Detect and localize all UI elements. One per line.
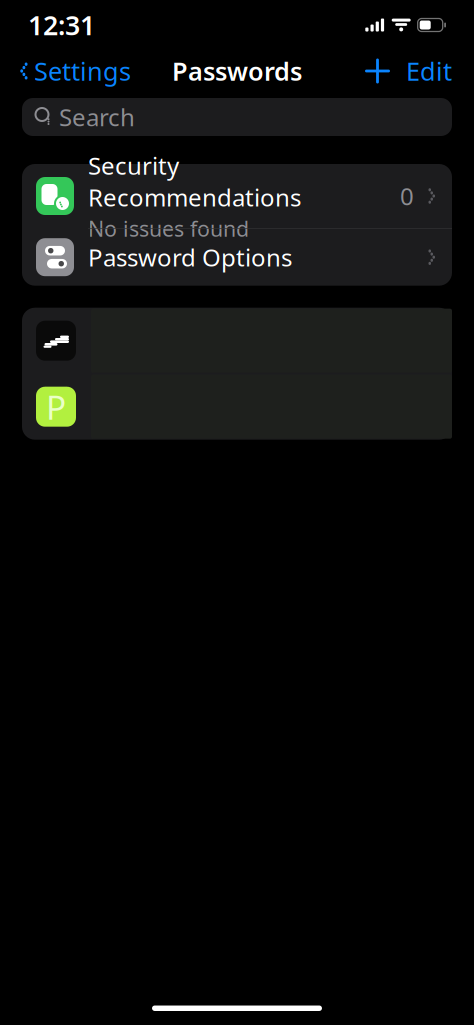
staticText: Passwords — [172, 54, 302, 88]
button[interactable]: Edit — [397, 48, 461, 94]
staticText: Settings — [34, 54, 131, 88]
staticText: Security Recommendations — [88, 149, 301, 213]
staticText: Edit — [406, 54, 452, 88]
button[interactable]: Security Recommendations — [22, 164, 452, 228]
button[interactable]: Add Password — [358, 52, 397, 89]
staticText: 12:31 — [28, 7, 95, 43]
staticText: Password Options — [88, 241, 292, 273]
button[interactable]: Nike saved password — [22, 308, 452, 374]
button[interactable]: Password Options — [22, 229, 452, 286]
staticText: Search — [59, 101, 135, 133]
staticText: No issues found — [88, 214, 249, 242]
staticText: P — [46, 385, 66, 429]
staticText: 0 — [400, 180, 414, 212]
button[interactable]: Saved password entry — [22, 374, 452, 440]
button[interactable]: Settings — [13, 48, 135, 94]
button[interactable]: Search — [22, 98, 452, 136]
